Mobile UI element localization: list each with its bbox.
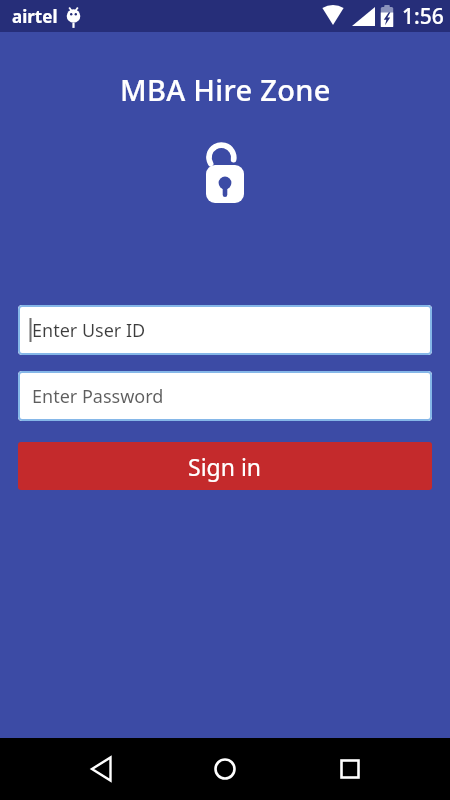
button[interactable]: Enter Password [18,371,432,421]
button[interactable]: Enter User ID [18,305,432,355]
staticText: Sign in [188,451,262,482]
button[interactable]: Sign in [18,442,432,490]
staticText: airtel [12,5,58,28]
button[interactable] [326,745,374,793]
staticText: Enter User ID [32,318,146,343]
staticText: MBA Hire Zone [120,70,331,109]
button[interactable] [77,745,125,793]
staticText: Enter Password [32,384,164,409]
staticText: 1:56 [402,2,444,31]
button[interactable] [201,745,249,793]
